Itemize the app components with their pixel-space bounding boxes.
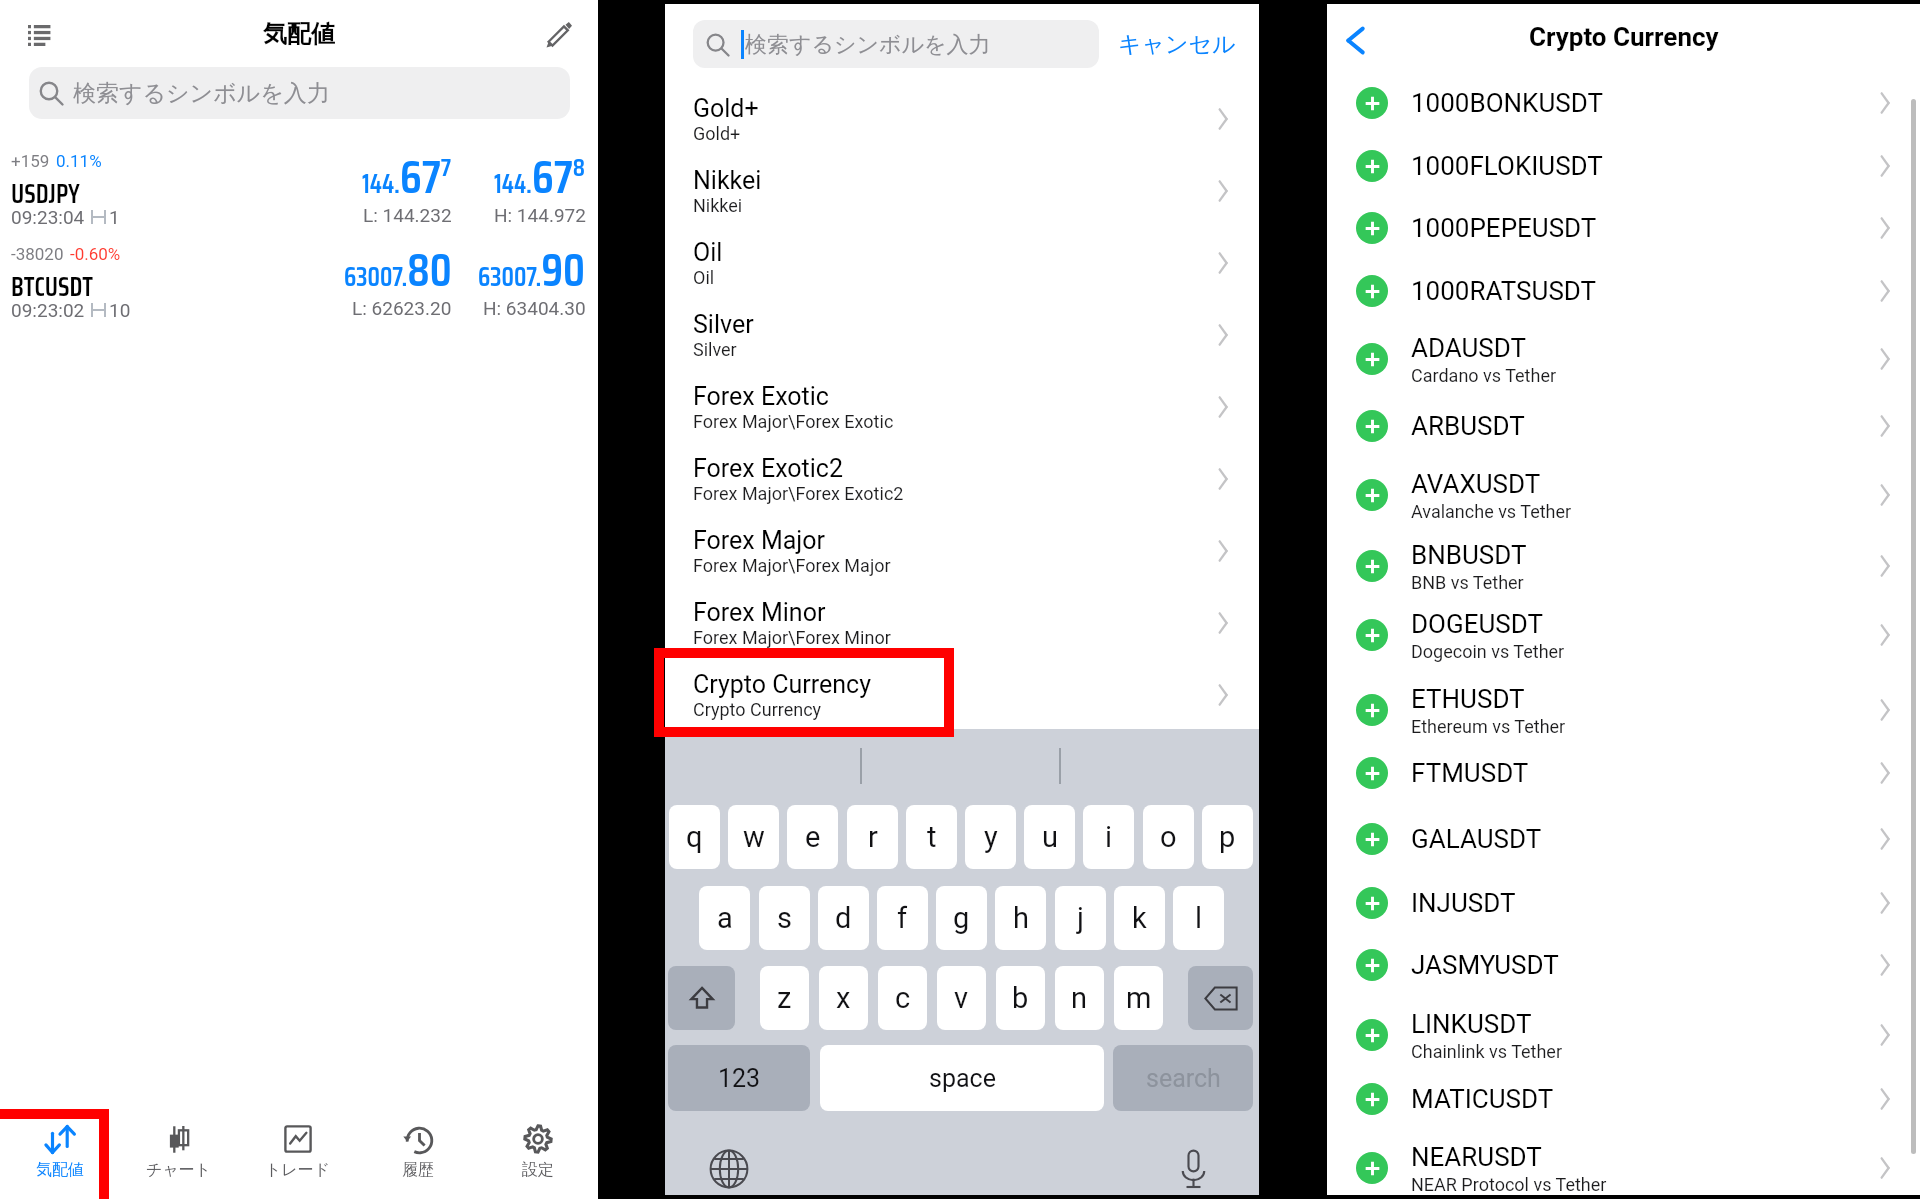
button[interactable]: Forex Exotic xyxy=(665,355,1259,427)
staticText: 144.678 xyxy=(494,141,586,213)
button[interactable]: u xyxy=(1024,805,1075,869)
button[interactable]: NEARUSDT xyxy=(1327,1128,1920,1192)
staticText: Forex Major\Forex Minor xyxy=(693,627,891,648)
button[interactable]: e xyxy=(787,805,838,869)
button[interactable]: Oil xyxy=(665,211,1259,283)
button[interactable]: d xyxy=(818,886,869,950)
staticText: L: 62623.20 xyxy=(352,297,452,319)
button[interactable]: LINKUSDT xyxy=(1327,995,1920,1059)
button[interactable]: キャンセル xyxy=(1113,20,1241,68)
button[interactable]: ETHUSDT xyxy=(1327,670,1920,734)
button[interactable]: 1000PEPEUSDT xyxy=(1327,199,1920,263)
button[interactable]: 1000BONKUSDT xyxy=(1327,74,1920,138)
button[interactable]: q xyxy=(669,805,720,869)
button[interactable]: 設定 xyxy=(478,1099,598,1199)
button[interactable]: w xyxy=(728,805,779,869)
button[interactable]: GALAUSDT xyxy=(1327,810,1920,874)
button[interactable]: t xyxy=(906,805,957,869)
button[interactable]: INJUSDT xyxy=(1327,874,1920,938)
button[interactable]: x xyxy=(819,966,868,1030)
button[interactable]: ARBUSDT xyxy=(1327,397,1920,461)
button[interactable]: トレード xyxy=(238,1099,358,1199)
button[interactable]: チャート xyxy=(119,1099,238,1199)
staticText: LINKUSDT xyxy=(1411,1009,1532,1039)
button[interactable]: f xyxy=(877,886,928,950)
button[interactable]: FTMUSDT xyxy=(1327,744,1920,808)
button[interactable]: z xyxy=(760,966,809,1030)
button[interactable]: j xyxy=(1055,886,1106,950)
button[interactable]: Dictate xyxy=(1168,1144,1218,1194)
button[interactable]: r xyxy=(847,805,898,869)
button[interactable]: 1000FLOKIUSDT xyxy=(1327,137,1920,201)
staticText: q xyxy=(686,820,703,854)
staticText: h xyxy=(1013,901,1029,935)
button[interactable]: 検索するシンボルを入力 xyxy=(29,67,570,119)
button[interactable]: DOGEUSDT xyxy=(1327,595,1920,659)
button[interactable]: -38020 xyxy=(0,241,598,334)
button[interactable]: search xyxy=(1113,1045,1253,1111)
button[interactable]: 気配値 xyxy=(0,1099,119,1199)
button[interactable]: b xyxy=(996,966,1045,1030)
button[interactable]: MATICUSDT xyxy=(1327,1070,1920,1134)
button[interactable]: Watchlists xyxy=(15,14,63,56)
button[interactable]: Forex Exotic2 xyxy=(665,427,1259,499)
button[interactable]: k xyxy=(1114,886,1165,950)
button[interactable]: a xyxy=(699,886,750,950)
button[interactable]: ADAUSDT xyxy=(1327,319,1920,383)
button[interactable]: i xyxy=(1083,805,1134,869)
button[interactable]: 1000RATSUSDT xyxy=(1327,262,1920,326)
button[interactable]: Back xyxy=(1331,16,1379,64)
staticText: 09:23:02 xyxy=(11,299,85,321)
button[interactable]: Gold+ xyxy=(665,67,1259,139)
button[interactable]: p xyxy=(1202,805,1253,869)
staticText: 123 xyxy=(718,1064,761,1093)
button[interactable]: Nikkei xyxy=(665,139,1259,211)
staticText: r xyxy=(868,820,878,854)
staticText: BNB vs Tether xyxy=(1411,572,1524,593)
staticText: -38020 xyxy=(11,244,64,264)
button[interactable]: JASMYUSDT xyxy=(1327,936,1920,1000)
staticText: USDJPY xyxy=(11,173,80,214)
button[interactable]: 履歴 xyxy=(358,1099,478,1199)
button[interactable]: space xyxy=(820,1045,1104,1111)
button[interactable]: y xyxy=(965,805,1016,869)
staticText: c xyxy=(895,981,911,1015)
staticText: j xyxy=(1077,901,1084,935)
staticText: Crypto Currency xyxy=(693,699,822,720)
staticText: H: 63404.30 xyxy=(483,297,586,319)
button[interactable]: v xyxy=(937,966,986,1030)
staticText: Forex Major\Forex Exotic2 xyxy=(693,483,904,504)
button[interactable]: Backspace xyxy=(1188,966,1253,1030)
button[interactable]: Silver xyxy=(665,283,1259,355)
button[interactable]: g xyxy=(936,886,987,950)
staticText: Forex Exotic2 xyxy=(693,454,843,483)
button[interactable]: 検索するシンボルを入力 xyxy=(693,20,1099,68)
staticText: f xyxy=(897,901,908,935)
staticText: 0.11% xyxy=(56,151,102,171)
button[interactable]: c xyxy=(878,966,927,1030)
button[interactable]: Shift xyxy=(668,966,735,1030)
button[interactable]: AVAXUSDT xyxy=(1327,455,1920,519)
button[interactable]: Change keyboard xyxy=(704,1144,754,1194)
button[interactable]: BNBUSDT xyxy=(1327,526,1920,590)
button[interactable]: l xyxy=(1173,886,1224,950)
button[interactable]: Edit xyxy=(535,14,583,56)
button[interactable]: Crypto Currency xyxy=(665,643,1259,715)
button[interactable]: Forex Minor xyxy=(665,571,1259,643)
button[interactable]: s xyxy=(759,886,810,950)
staticText: s xyxy=(777,901,792,935)
staticText: Ethereum vs Tether xyxy=(1411,716,1566,737)
staticText: Oil xyxy=(693,267,715,288)
button[interactable]: n xyxy=(1055,966,1104,1030)
button[interactable]: 123 xyxy=(668,1045,810,1111)
button[interactable]: Forex Major xyxy=(665,499,1259,571)
staticText: 1000RATSUSDT xyxy=(1411,276,1597,306)
staticText: 1 xyxy=(109,206,120,228)
staticText: Forex Exotic xyxy=(693,382,829,411)
button[interactable]: o xyxy=(1143,805,1194,869)
button[interactable]: h xyxy=(995,886,1046,950)
button[interactable]: m xyxy=(1114,966,1163,1030)
staticText: 気配値 xyxy=(263,19,335,49)
staticText: ARBUSDT xyxy=(1411,411,1525,441)
button[interactable]: +159 xyxy=(0,148,598,241)
